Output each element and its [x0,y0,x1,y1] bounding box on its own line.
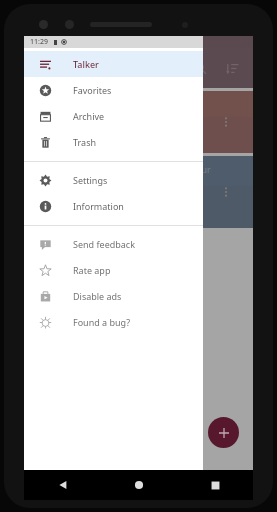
staticText: Rate app [73,264,111,276]
staticText: Send feedback [73,238,135,250]
button[interactable]: Recents [177,470,253,500]
button[interactable]: Rate app [24,257,203,283]
button[interactable]: our [24,156,253,228]
button[interactable]: More options [217,113,235,131]
button[interactable]: Settings [24,167,203,193]
staticText: Settings [73,174,108,186]
staticText: 11:29 [30,37,48,47]
button[interactable]: Favorites [24,77,203,103]
staticText: Found a bug? [73,316,131,328]
button[interactable]: Information [24,193,203,219]
button[interactable]: Send feedback [24,231,203,257]
button[interactable]: More options [24,91,253,153]
button[interactable]: Trash [24,129,203,155]
button[interactable]: Search [187,55,213,81]
button[interactable]: Talker [24,51,203,77]
button[interactable]: More options [217,183,235,201]
button[interactable]: Found a bug? [24,309,203,335]
button[interactable]: Add note [208,417,239,448]
staticText: Disable ads [73,290,122,302]
button[interactable]: Archive [24,103,203,129]
button[interactable]: Back [24,470,101,500]
button[interactable]: Disable ads [24,283,203,309]
button[interactable]: Sort [219,55,245,81]
staticText: our [196,163,211,175]
staticText: Talker [73,58,99,70]
staticText: Favorites [73,84,112,96]
staticText: Archive [73,110,105,122]
button[interactable]: Home [101,470,177,500]
staticText: Information [73,200,124,212]
staticText: Trash [73,136,97,148]
